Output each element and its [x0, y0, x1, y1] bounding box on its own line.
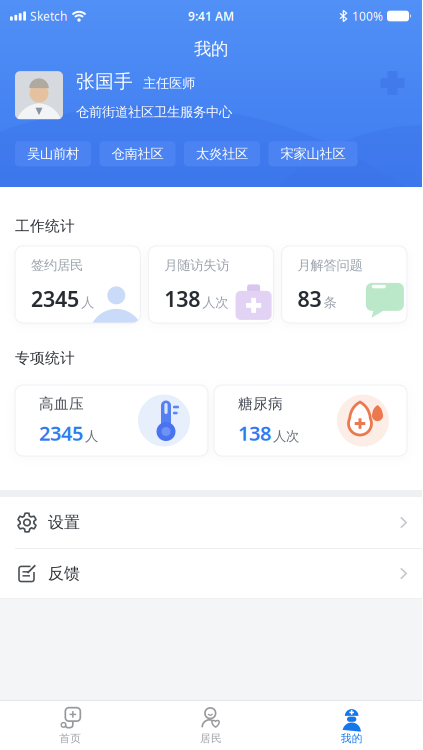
button[interactable]: 我的	[281, 706, 422, 745]
button[interactable]: 反馈	[0, 549, 422, 598]
staticText: 我的	[341, 732, 363, 745]
staticText: 138	[164, 284, 200, 313]
staticText: 高血压	[39, 395, 84, 413]
staticText: 83	[298, 284, 322, 313]
staticText: 专项统计	[15, 349, 75, 367]
staticText: 人	[85, 428, 98, 445]
staticText: 我的	[194, 38, 228, 60]
staticText: 100%	[352, 8, 383, 24]
staticText: 首页	[59, 732, 81, 745]
staticText: 仓南社区	[111, 146, 163, 162]
staticText: 人次	[273, 428, 299, 445]
staticText: 太炎社区	[196, 146, 248, 162]
staticText: 9:41 AM	[188, 8, 234, 24]
staticText: 张国手	[76, 70, 133, 93]
staticText: 设置	[48, 513, 80, 532]
staticText: 签约居民	[31, 257, 83, 274]
staticText: 反馈	[48, 564, 80, 583]
staticText: 糖尿病	[238, 395, 283, 413]
staticText: 工作统计	[15, 217, 75, 235]
staticText: 吴山前村	[27, 146, 79, 162]
staticText: 人次	[202, 294, 228, 311]
staticText: 月随访失访	[164, 257, 229, 274]
staticText: 仓前街道社区卫生服务中心	[76, 104, 232, 120]
staticText: 主任医师	[143, 75, 195, 91]
staticText: 月解答问题	[298, 257, 363, 274]
staticText: 条	[324, 294, 337, 311]
button[interactable]: 设置	[0, 497, 422, 548]
staticText: 138	[238, 420, 271, 446]
staticText: Sketch	[30, 8, 67, 24]
staticText: 人	[81, 294, 94, 311]
staticText: 2345	[39, 420, 83, 446]
button[interactable]: 居民	[141, 706, 281, 745]
staticText: 2345	[31, 284, 79, 313]
staticText: 居民	[200, 732, 222, 745]
button[interactable]: 首页	[0, 706, 141, 745]
staticText: 宋家山社区	[280, 146, 345, 162]
